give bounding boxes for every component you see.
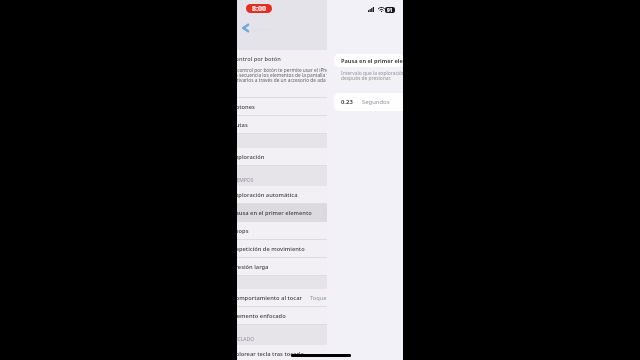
button[interactable]: Colorear tecla tras tocarla <box>237 345 391 360</box>
button[interactable]: Presión larga <box>237 258 391 276</box>
staticText: Repetición de movimiento <box>237 245 305 253</box>
button[interactable]: Elemento enfocado <box>237 307 391 325</box>
staticText: Colorear tecla tras tocarla <box>237 350 304 358</box>
button[interactable]: Comportamiento al tocar <box>237 289 391 307</box>
staticText: 91 <box>387 7 393 13</box>
button[interactable]: Botones <box>237 98 391 116</box>
button[interactable]: Exploración automática <box>237 186 391 204</box>
button[interactable]: Loops <box>237 222 391 240</box>
staticText: Segundos <box>362 98 390 106</box>
staticText: Comportamiento al tocar <box>237 294 302 302</box>
staticText: Pausa en el primer elemento <box>237 209 312 217</box>
button[interactable]: Rutas <box>237 116 391 134</box>
staticText: 8:00 <box>252 4 266 13</box>
staticText: Botones <box>237 103 255 111</box>
staticText: TECLADO <box>237 336 255 343</box>
staticText: Pausa en el primer elem <box>341 57 403 65</box>
staticText: TIEMPOS <box>237 177 254 184</box>
button[interactable]: Pausa en el primer elemento <box>237 204 391 222</box>
staticText: Exploración automática <box>237 191 298 199</box>
staticText: Intervalo que la exploración después de … <box>341 70 403 82</box>
staticText: Exploración <box>237 153 265 161</box>
staticText: Elemento enfocado <box>237 312 286 320</box>
staticText: Presión larga <box>237 263 269 271</box>
button[interactable]: 0.23 <box>334 93 403 111</box>
button[interactable]: Back <box>240 22 251 34</box>
staticText: 0.23 <box>341 98 353 106</box>
staticText: Toque <box>310 294 327 302</box>
button[interactable]: Pausa en el primer elem <box>334 54 403 67</box>
button[interactable]: Repetición de movimiento <box>237 240 391 258</box>
staticText: Loops <box>237 227 249 235</box>
staticText: Rutas <box>237 121 248 129</box>
staticText: Control por botón <box>237 55 281 63</box>
staticText: El control por botón te permite usar el … <box>237 67 330 83</box>
button[interactable]: Exploración <box>237 148 391 166</box>
